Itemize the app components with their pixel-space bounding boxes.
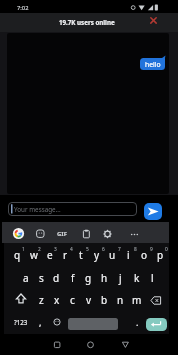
staticText: w	[30, 248, 38, 262]
button[interactable]	[81, 228, 92, 240]
staticText: i	[127, 248, 130, 262]
button[interactable]	[12, 227, 25, 240]
staticText: 0	[165, 246, 168, 253]
staticText: 9	[150, 246, 153, 253]
staticText: 8	[134, 246, 137, 253]
button[interactable]	[148, 293, 164, 308]
staticText: n	[117, 293, 124, 307]
staticText: g	[85, 271, 92, 285]
staticText: 19.7K users online	[59, 18, 115, 26]
staticText: ,	[39, 316, 42, 328]
button[interactable]: d	[49, 269, 64, 287]
staticText: Your message...	[14, 205, 61, 214]
staticText: o	[141, 248, 148, 262]
staticText: q	[14, 248, 21, 262]
staticText: hello	[145, 60, 161, 69]
button[interactable]	[146, 318, 167, 331]
button[interactable]: y	[89, 246, 104, 264]
staticText: 6	[102, 246, 105, 253]
button[interactable]	[117, 337, 134, 353]
button[interactable]: q	[10, 246, 25, 264]
button[interactable]: GIF	[54, 225, 70, 243]
button[interactable]: l	[145, 269, 160, 287]
staticText: m	[132, 293, 142, 307]
button[interactable]: m	[129, 291, 144, 309]
button[interactable]: g	[81, 269, 96, 287]
staticText: l	[151, 271, 154, 285]
staticText: ?123	[14, 318, 28, 326]
staticText: h	[101, 271, 108, 285]
button[interactable]: w	[26, 246, 41, 264]
button[interactable]: s	[34, 269, 49, 287]
staticText: 1	[22, 246, 25, 253]
staticText: c	[70, 293, 75, 307]
button[interactable]: n	[113, 291, 128, 309]
button[interactable]	[49, 337, 65, 353]
staticText: 7	[118, 246, 121, 253]
staticText: k	[134, 271, 140, 285]
staticText: 3	[54, 246, 57, 253]
button[interactable]	[102, 228, 113, 240]
button[interactable]: k	[129, 269, 144, 287]
staticText: a	[23, 271, 29, 285]
staticText: 4	[70, 246, 73, 253]
button[interactable]	[82, 337, 99, 353]
staticText: 7:02	[17, 4, 29, 12]
button[interactable]	[51, 316, 63, 328]
button[interactable]: b	[97, 291, 112, 309]
staticText: p	[157, 248, 164, 262]
button[interactable]: ?123	[10, 313, 32, 331]
staticText: y	[94, 248, 100, 262]
button[interactable]: i	[121, 246, 136, 264]
staticText: t	[79, 248, 83, 262]
staticText: x	[54, 293, 60, 307]
button[interactable]: .	[131, 313, 144, 331]
button[interactable]: e	[42, 246, 57, 264]
button[interactable]	[128, 229, 141, 240]
button[interactable]: a	[18, 269, 33, 287]
staticText: 2	[38, 246, 41, 253]
button[interactable]: u	[105, 246, 120, 264]
staticText: j	[119, 271, 122, 285]
button[interactable]: j	[113, 269, 128, 287]
button[interactable]	[8, 202, 137, 216]
staticText: .	[136, 316, 139, 328]
staticText: v	[86, 293, 92, 307]
button[interactable]: x	[49, 291, 64, 309]
button[interactable]	[146, 13, 161, 28]
staticText: b	[101, 293, 108, 307]
button[interactable]	[68, 318, 118, 330]
staticText: GIF	[57, 230, 67, 238]
button[interactable]: c	[65, 291, 80, 309]
staticText: r	[63, 248, 68, 262]
button[interactable]: t	[73, 246, 88, 264]
staticText: z	[39, 293, 44, 307]
staticText: u	[109, 248, 116, 262]
button[interactable]: ,	[34, 313, 47, 331]
button[interactable]	[35, 228, 46, 239]
staticText: s	[39, 271, 44, 285]
button[interactable]	[144, 203, 162, 220]
button[interactable]: h	[97, 269, 112, 287]
staticText: 5	[86, 246, 89, 253]
button[interactable]: z	[34, 291, 49, 309]
button[interactable]: o	[137, 246, 152, 264]
staticText: e	[47, 248, 53, 262]
button[interactable]: f	[65, 269, 80, 287]
button[interactable]	[13, 291, 29, 307]
staticText: d	[53, 271, 60, 285]
button[interactable]: v	[81, 291, 96, 309]
staticText: f	[71, 271, 75, 285]
button[interactable]: p	[153, 246, 168, 264]
button[interactable]: r	[58, 246, 73, 264]
